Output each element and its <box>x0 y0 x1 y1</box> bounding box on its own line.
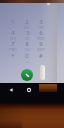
staticText: 7 <box>11 40 15 48</box>
staticText: 3 <box>39 18 43 26</box>
staticText: 8 <box>25 40 29 48</box>
staticText: * <box>11 52 15 60</box>
button[interactable]: Home <box>24 85 33 94</box>
button[interactable]: Back <box>6 85 15 94</box>
button[interactable]: Call <box>21 69 33 81</box>
staticText: MNO <box>37 37 45 40</box>
staticText: + <box>26 60 28 63</box>
staticText: 0 <box>25 52 29 60</box>
staticText: 1 <box>11 18 15 26</box>
button[interactable]: 2 <box>20 18 34 29</box>
staticText: TUV <box>24 48 30 51</box>
staticText: PQRS <box>9 48 17 51</box>
staticText: 4 <box>11 29 15 37</box>
button[interactable]: # <box>34 52 48 63</box>
button[interactable]: 4 <box>6 29 20 40</box>
staticText: 9 <box>39 40 43 48</box>
button[interactable]: 1 <box>6 18 20 29</box>
staticText: DEF <box>38 26 44 29</box>
button[interactable]: 3 <box>34 18 48 29</box>
staticText: # <box>39 52 43 60</box>
button[interactable]: 7 <box>6 40 20 51</box>
button[interactable]: 5 <box>20 29 34 40</box>
button[interactable]: 6 <box>34 29 48 40</box>
button[interactable]: 8 <box>20 40 34 51</box>
staticText: JKL <box>25 37 30 40</box>
button[interactable]: * <box>6 52 20 63</box>
button[interactable]: 9 <box>34 40 48 51</box>
staticText: 5 <box>26 29 30 37</box>
staticText: ABC <box>24 26 30 29</box>
button[interactable]: 0 <box>20 52 34 63</box>
staticText: 2 <box>25 18 29 26</box>
staticText: WXYZ <box>37 48 45 51</box>
staticText: 6 <box>39 29 43 37</box>
